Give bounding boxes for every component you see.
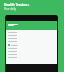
staticText: Health Tracker+ — [4, 3, 30, 7]
staticText: Your daily — [4, 7, 16, 11]
